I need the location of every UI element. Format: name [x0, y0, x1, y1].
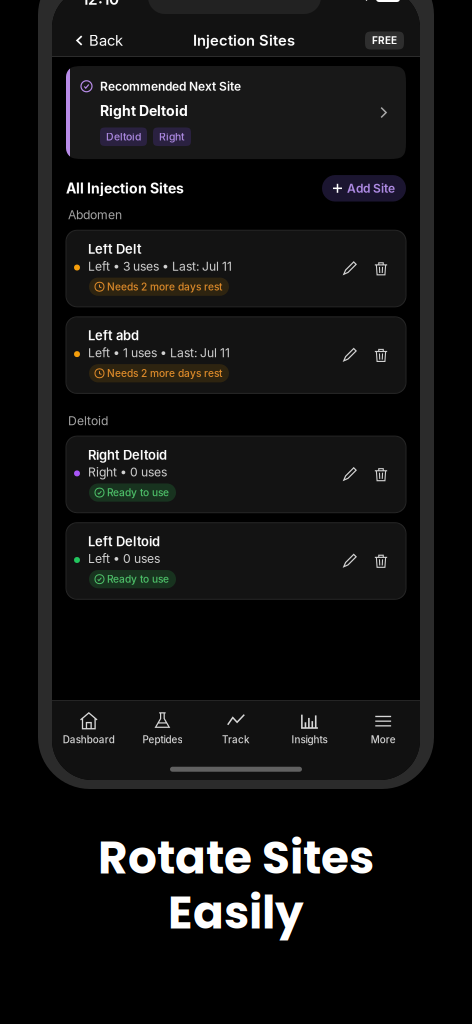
staticText: Insights	[292, 734, 328, 746]
staticText: Left Deltoid	[88, 534, 160, 549]
staticText: Left Delt	[88, 241, 142, 257]
staticText: Rotate Sites	[98, 826, 374, 889]
button[interactable]: FREE	[365, 31, 420, 50]
staticText: Dashboard	[63, 734, 115, 746]
button[interactable]: Edit	[342, 467, 357, 482]
button[interactable]: Edit	[342, 553, 357, 568]
button[interactable]: Recommended Next Site	[52, 66, 420, 159]
staticText: Track	[222, 734, 250, 746]
staticText: FREE	[372, 34, 397, 47]
staticText: Left • 1 uses • Last: Jul 11	[88, 345, 230, 360]
staticText: Left abd	[88, 328, 139, 343]
staticText: Ready to use	[107, 573, 169, 585]
button[interactable]: Edit	[342, 348, 357, 363]
staticText: Recommended Next Site	[100, 79, 241, 93]
staticText: All Injection Sites	[66, 180, 184, 197]
staticText: Easily	[168, 881, 304, 944]
staticText: Right Deltoid	[88, 447, 167, 463]
staticText: Left • 0 uses	[88, 551, 160, 566]
staticText: Peptides	[142, 734, 182, 746]
staticText: Right	[159, 130, 185, 143]
staticText: Right Deltoid	[100, 102, 188, 119]
button[interactable]: Delete	[374, 261, 388, 275]
button[interactable]: More	[346, 712, 420, 746]
staticText: Add Site	[347, 181, 395, 195]
button[interactable]: Delete	[374, 348, 388, 362]
button[interactable]: Left abd	[66, 317, 406, 393]
button[interactable]: Right Deltoid	[66, 436, 406, 513]
button[interactable]: Add Site	[322, 175, 406, 201]
button[interactable]: Dashboard	[52, 712, 126, 746]
button[interactable]: Left Deltoid	[66, 523, 406, 599]
staticText: Deltoid	[68, 413, 108, 428]
staticText: Ready to use	[107, 486, 169, 499]
button[interactable]: Left Delt	[66, 230, 406, 307]
staticText: Abdomen	[68, 208, 122, 222]
staticText: Right • 0 uses	[88, 465, 167, 479]
staticText: Needs 2 more days rest	[107, 281, 222, 293]
button[interactable]: Delete	[374, 554, 388, 568]
staticText: More	[371, 734, 396, 746]
staticText: Injection Sites	[193, 32, 295, 49]
staticText: Left • 3 uses • Last: Jul 11	[88, 259, 232, 274]
staticText: Deltoid	[106, 130, 141, 143]
button[interactable]: Edit	[342, 261, 357, 276]
staticText: Needs 2 more days rest	[107, 367, 222, 379]
staticText: 12:10	[82, 0, 119, 9]
button[interactable]: Track	[199, 712, 273, 746]
button[interactable]: Insights	[273, 712, 346, 746]
button[interactable]: Delete	[374, 467, 388, 481]
staticText: Back	[89, 32, 123, 49]
button[interactable]: Peptides	[126, 712, 199, 746]
button[interactable]: Back	[52, 27, 123, 54]
